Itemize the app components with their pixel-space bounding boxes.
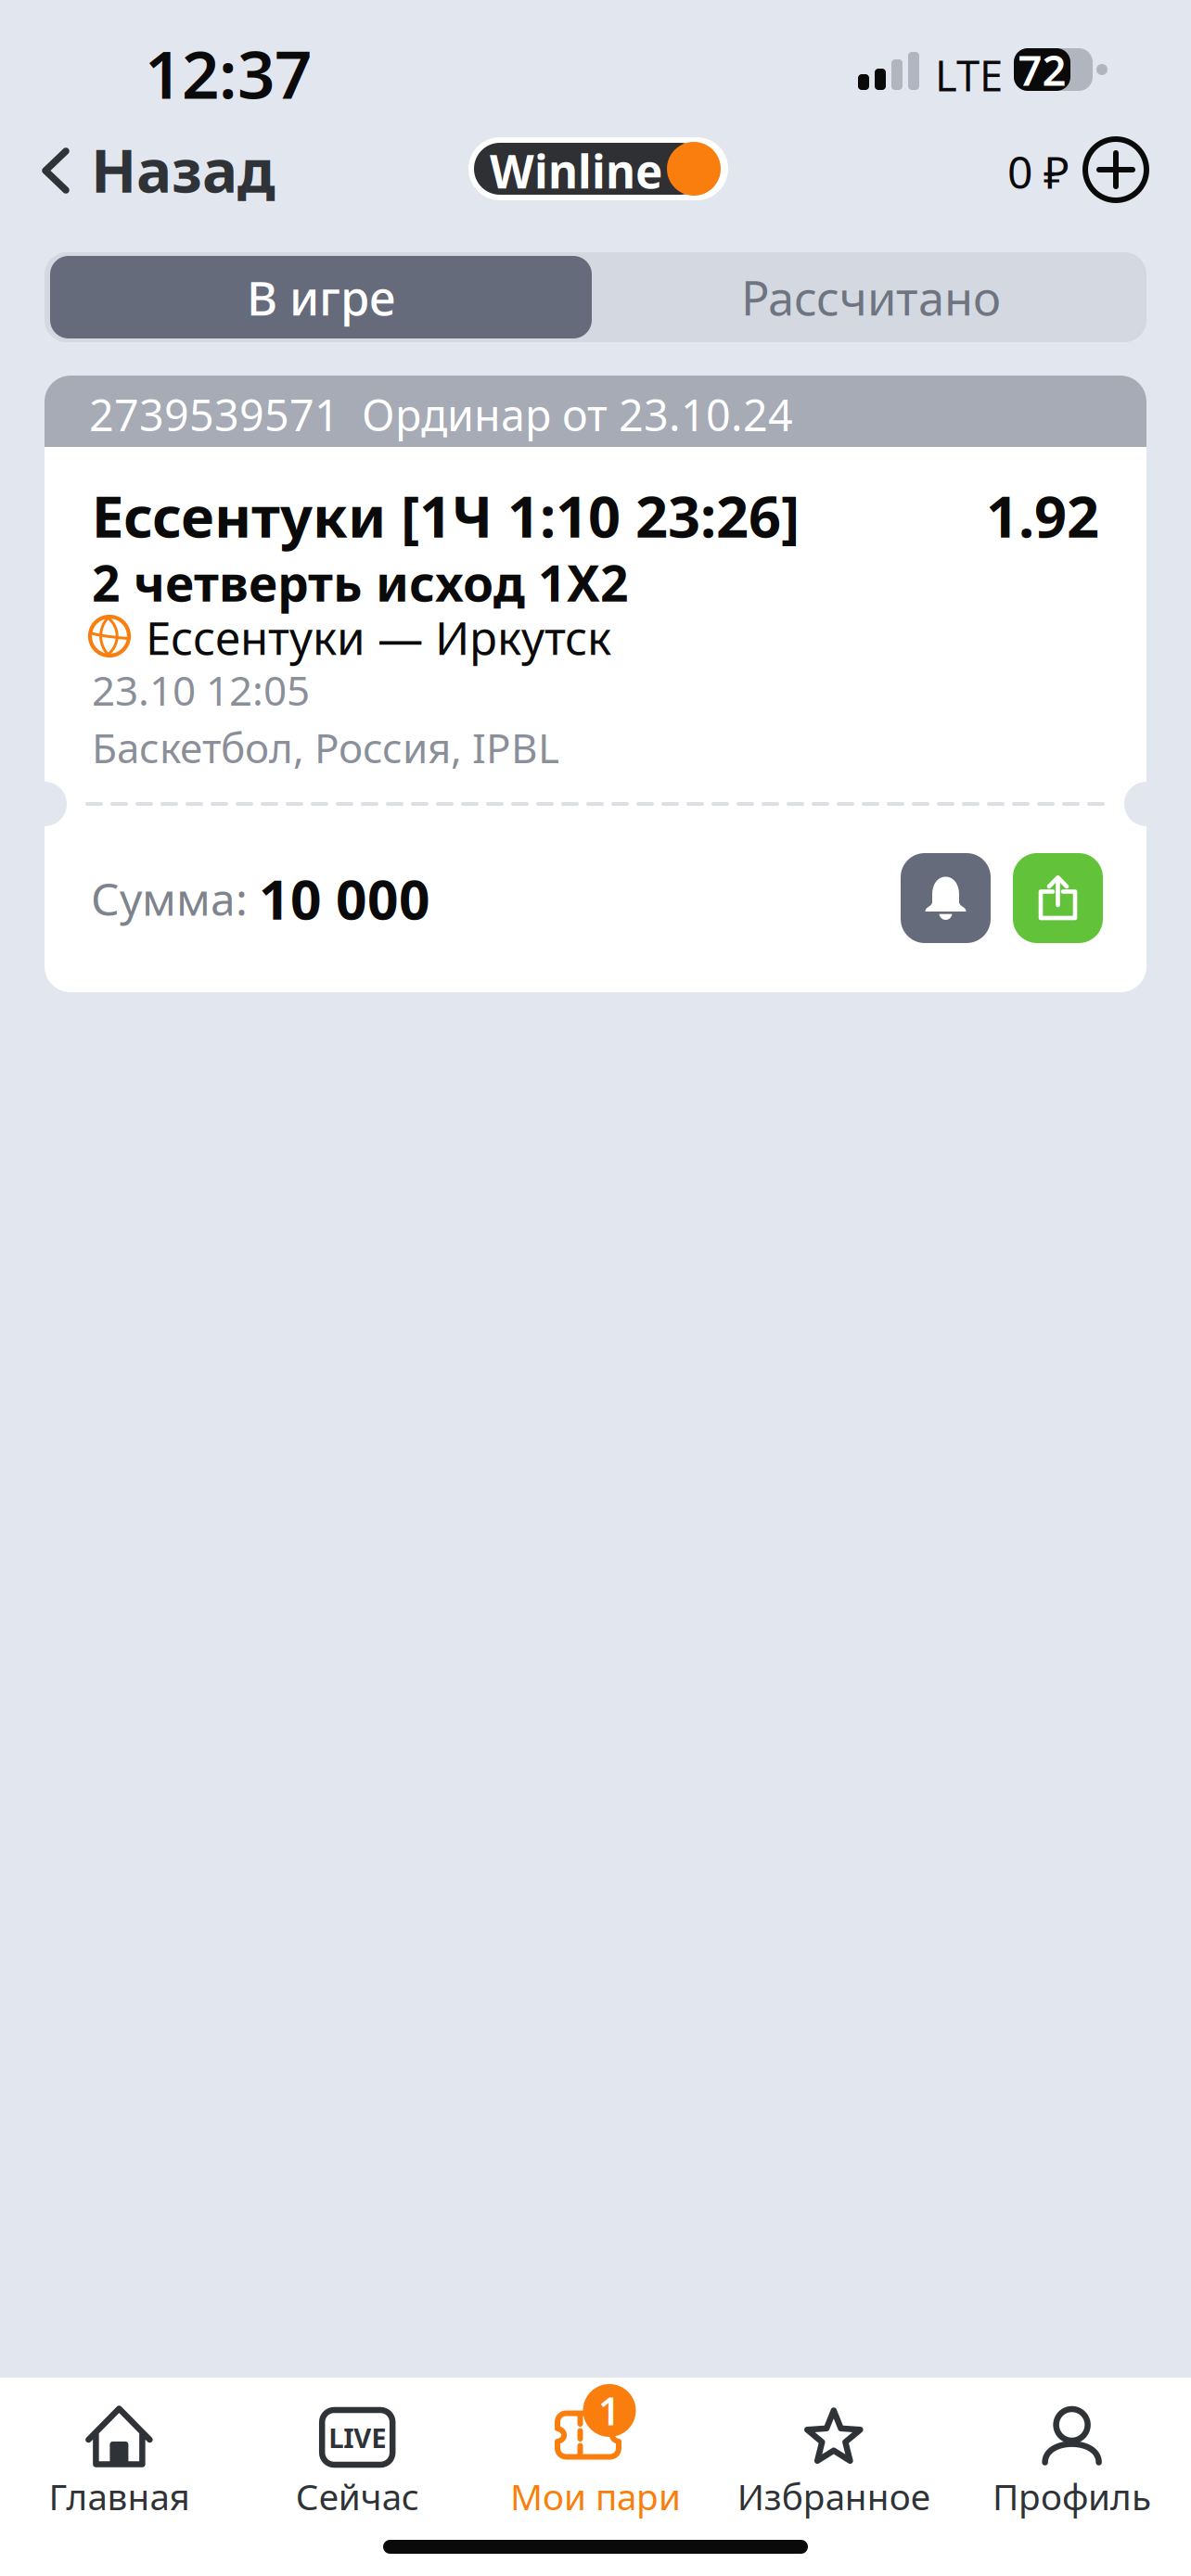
button[interactable]: Winline	[468, 137, 728, 200]
staticText: 2 четверть исход 1X2	[92, 550, 629, 615]
staticText: 12:37	[145, 30, 312, 117]
staticText: 72	[1018, 42, 1066, 97]
button[interactable]: Главная	[0, 2378, 238, 2576]
staticText: Сумма:	[91, 869, 259, 928]
staticText: Избранное	[737, 2472, 930, 2520]
staticText: 2739539571 Ординар от 23.10.24	[89, 386, 793, 443]
staticText: Сейчас	[296, 2472, 419, 2520]
staticText: Назад	[91, 130, 275, 209]
button[interactable]: Профиль	[953, 2378, 1191, 2576]
staticText: 1	[598, 2385, 621, 2436]
staticText: Мои пари	[510, 2472, 681, 2520]
staticText: 23.10 12:05	[92, 663, 310, 717]
button[interactable]: Избранное	[715, 2378, 953, 2576]
staticText: 0 ₽	[1007, 142, 1069, 201]
staticText: Ессентуки — Иркутск	[146, 607, 611, 667]
staticText: LTE	[935, 47, 1003, 103]
button[interactable]: 0 ₽	[1007, 139, 1152, 200]
staticText: Рассчитано	[741, 266, 1001, 328]
staticText: Winline	[490, 140, 662, 201]
button[interactable]: В игре	[46, 252, 595, 342]
button[interactable]: Уведомления о пари	[901, 853, 991, 943]
staticText: Баскетбол, Россия, IPBL	[92, 720, 559, 774]
staticText: 10 000	[259, 862, 430, 935]
staticText: В игре	[247, 266, 395, 328]
button[interactable]: Назад	[28, 137, 288, 202]
staticText: 1.92	[986, 478, 1099, 553]
staticText: Ессентуки [1Ч 1:10 23:26]	[92, 478, 800, 553]
staticText: Профиль	[993, 2472, 1151, 2520]
staticText: LIVE	[329, 2419, 386, 2455]
button[interactable]: LIVE	[238, 2378, 476, 2576]
staticText: Главная	[49, 2472, 190, 2520]
button[interactable]: Поделиться пари	[1013, 853, 1103, 943]
button[interactable]: Рассчитано	[595, 252, 1146, 342]
button[interactable]: 1	[476, 2378, 715, 2576]
